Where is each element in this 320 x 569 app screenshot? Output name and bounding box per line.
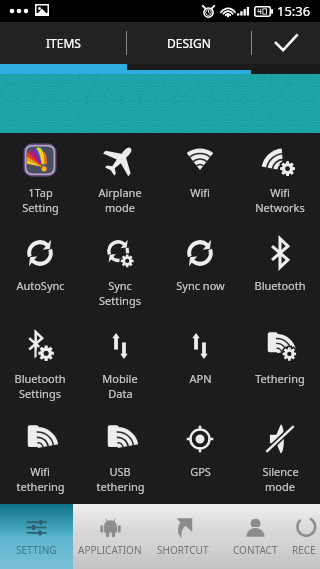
staticText: mode <box>265 479 295 494</box>
staticText: tethering <box>16 479 65 494</box>
button[interactable]: SETTING <box>0 504 73 569</box>
staticText: Networks <box>255 200 305 215</box>
button[interactable]: ITEMS <box>0 22 126 64</box>
button[interactable]: Airplane <box>80 133 160 226</box>
staticText: Airplane <box>98 185 142 200</box>
button[interactable]: USB <box>80 412 160 504</box>
button[interactable]: GPS <box>160 412 240 504</box>
button[interactable]: Silence <box>240 412 320 504</box>
button[interactable]: Mobile <box>80 319 160 412</box>
button[interactable]: APPLICATION <box>73 504 146 569</box>
button[interactable]: AutoSync <box>0 226 80 319</box>
staticText: Sync <box>108 278 132 293</box>
button[interactable]: Done <box>252 22 320 64</box>
button[interactable]: Wifi <box>240 133 320 226</box>
staticText: Data <box>108 386 133 401</box>
staticText: Silence <box>262 464 299 479</box>
staticText: Mobile <box>102 371 138 386</box>
button[interactable]: Tethering <box>240 319 320 412</box>
staticText: USB <box>109 464 131 479</box>
staticText: APN <box>189 371 212 386</box>
staticText: Bluetooth <box>254 278 306 293</box>
staticText: 1Tap <box>28 185 53 200</box>
staticText: APPLICATION <box>78 543 142 557</box>
staticText: AutoSync <box>16 278 65 293</box>
staticText: Wifi <box>270 185 290 200</box>
staticText: DESIGN <box>167 35 211 51</box>
button[interactable]: CONTACT <box>219 504 292 569</box>
button[interactable]: DESIGN <box>127 22 251 64</box>
button[interactable]: Bluetooth <box>240 226 320 319</box>
staticText: Bluetooth <box>14 371 66 386</box>
button[interactable]: RECENT <box>292 504 320 569</box>
button[interactable]: 1Tap <box>0 133 80 226</box>
staticText: SHORTCUT <box>157 543 209 557</box>
staticText: Wifi <box>190 185 210 200</box>
button[interactable]: Wifi <box>160 133 240 226</box>
staticText: Setting <box>22 200 59 215</box>
button[interactable]: SHORTCUT <box>146 504 219 569</box>
button[interactable]: Wifi <box>0 412 80 504</box>
staticText: RECENT <box>292 543 320 557</box>
staticText: GPS <box>190 464 211 479</box>
staticText: SETTING <box>16 543 57 557</box>
staticText: Settings <box>99 293 141 308</box>
staticText: Sync now <box>176 278 225 293</box>
staticText: CONTACT <box>233 543 278 557</box>
staticText: Wifi <box>30 464 50 479</box>
button[interactable]: Sync now <box>160 226 240 319</box>
staticText: mode <box>105 200 135 215</box>
button[interactable]: Bluetooth <box>0 319 80 412</box>
staticText: Settings <box>19 386 61 401</box>
staticText: 15:36 <box>277 2 311 20</box>
staticText: Tethering <box>255 371 305 386</box>
staticText: tethering <box>96 479 145 494</box>
staticText: ITEMS <box>46 35 81 51</box>
button[interactable]: APN <box>160 319 240 412</box>
button[interactable]: Sync <box>80 226 160 319</box>
